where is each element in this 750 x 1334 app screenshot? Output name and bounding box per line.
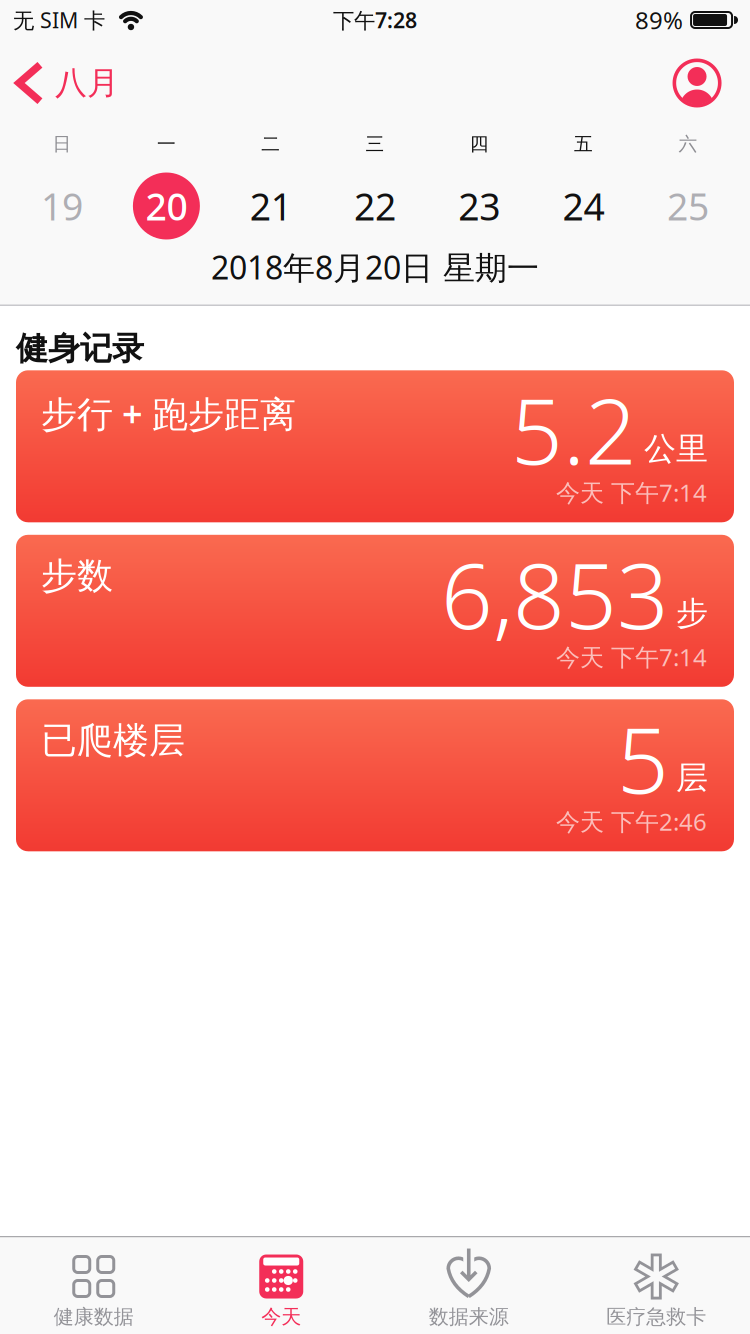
button[interactable] [672, 58, 722, 108]
staticText: 下午7:28 [333, 6, 417, 34]
staticText: 步数 [41, 554, 113, 598]
button[interactable]: 今天 [187, 1237, 375, 1334]
staticText: 5 [617, 698, 669, 818]
button[interactable]: 已爬楼层 [16, 699, 734, 851]
button[interactable]: 健康数据 [0, 1237, 187, 1334]
staticText: 25 [667, 181, 709, 231]
staticText: 22 [354, 181, 396, 231]
staticText: 今天 下午7:14 [556, 476, 707, 508]
staticText: 公里 [644, 429, 708, 468]
button[interactable]: 25 [636, 162, 740, 250]
staticText: 四 [470, 132, 489, 155]
staticText: 已爬楼层 [41, 718, 185, 762]
staticText: 五 [574, 132, 593, 155]
staticText: 19 [41, 181, 83, 231]
staticText: 今天 下午7:14 [556, 641, 707, 673]
staticText: 5.2 [511, 369, 637, 489]
staticText: 23 [458, 181, 500, 231]
staticText: 无 SIM 卡 [13, 6, 105, 34]
staticText: 24 [563, 181, 605, 231]
staticText: 健康数据 [54, 1304, 134, 1329]
button[interactable]: 数据来源 [375, 1237, 562, 1334]
button[interactable]: 20 [114, 162, 219, 250]
button[interactable]: 八月 [14, 61, 119, 105]
staticText: 20 [145, 181, 187, 231]
staticText: 步 [676, 594, 708, 633]
button[interactable]: 步数 [16, 535, 734, 687]
staticText: 层 [676, 758, 708, 797]
staticText: 日 [53, 132, 72, 155]
staticText: 六 [678, 132, 697, 155]
staticText: 89% [635, 4, 683, 36]
staticText: 八月 [55, 63, 119, 103]
button[interactable]: 步行 + 跑步距离 [16, 370, 734, 522]
button[interactable]: 23 [427, 162, 531, 250]
staticText: 2018年8月20日 星期一 [211, 246, 539, 288]
staticText: 医疗急救卡 [606, 1304, 706, 1329]
staticText: 数据来源 [429, 1304, 509, 1329]
button[interactable]: 医疗急救卡 [562, 1237, 750, 1334]
staticText: 二 [261, 132, 280, 155]
staticText: 一 [157, 132, 176, 155]
staticText: 今天 [261, 1304, 301, 1329]
staticText: 21 [250, 181, 292, 231]
staticText: 今天 下午2:46 [556, 805, 707, 837]
button[interactable]: 24 [531, 162, 636, 250]
staticText: 步行 + 跑步距离 [41, 389, 296, 437]
button[interactable]: 19 [10, 162, 114, 250]
button[interactable]: 21 [219, 162, 323, 250]
staticText: 6,853 [441, 534, 669, 654]
button[interactable]: 22 [323, 162, 427, 250]
staticText: 健身记录 [16, 329, 144, 368]
staticText: 三 [365, 132, 384, 155]
